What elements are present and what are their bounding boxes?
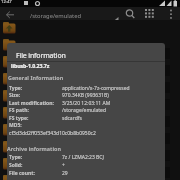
- staticText: Type:: [9, 154, 23, 161]
- staticText: +: [62, 162, 65, 169]
- staticText: 3/25/20 12:03:11 AM: [62, 100, 111, 107]
- staticText: File count:: [9, 170, 35, 177]
- staticText: cf3d3dd2ff053ef343d10c0b8b0950c2: [9, 130, 96, 137]
- button[interactable]: File information: [7, 43, 165, 180]
- button[interactable]: [168, 9, 174, 20]
- button[interactable]: [145, 9, 156, 20]
- button[interactable]: [6, 11, 15, 19]
- button[interactable]: [125, 9, 136, 20]
- staticText: 12:47: [1, 0, 12, 5]
- button[interactable]: [0, 7, 180, 20]
- staticText: 970.34KB (993631B): [62, 92, 109, 99]
- staticText: Type:: [9, 85, 23, 92]
- staticText: FS path:: [9, 107, 29, 114]
- staticText: MD5:: [9, 122, 22, 129]
- staticText: Solid:: [9, 162, 23, 169]
- staticText: /storage/emulated: [62, 107, 106, 114]
- staticText: /storage/emulated: [30, 12, 82, 20]
- staticText: sdcardfs: [62, 115, 82, 122]
- staticText: File information: [16, 51, 66, 61]
- staticText: General Information: [8, 74, 64, 81]
- staticText: libusb-1.0.23.7z: [11, 62, 50, 69]
- staticText: 29: [62, 170, 68, 177]
- staticText: FS type:: [9, 115, 29, 122]
- staticText: Last modification:: [9, 100, 54, 107]
- staticText: Size:: [9, 92, 21, 99]
- staticText: 7z / LZMA2:23 BCJ: [62, 154, 104, 161]
- staticText: application/x-7z-compressed: [62, 85, 130, 92]
- staticText: Archive information: [7, 145, 61, 152]
